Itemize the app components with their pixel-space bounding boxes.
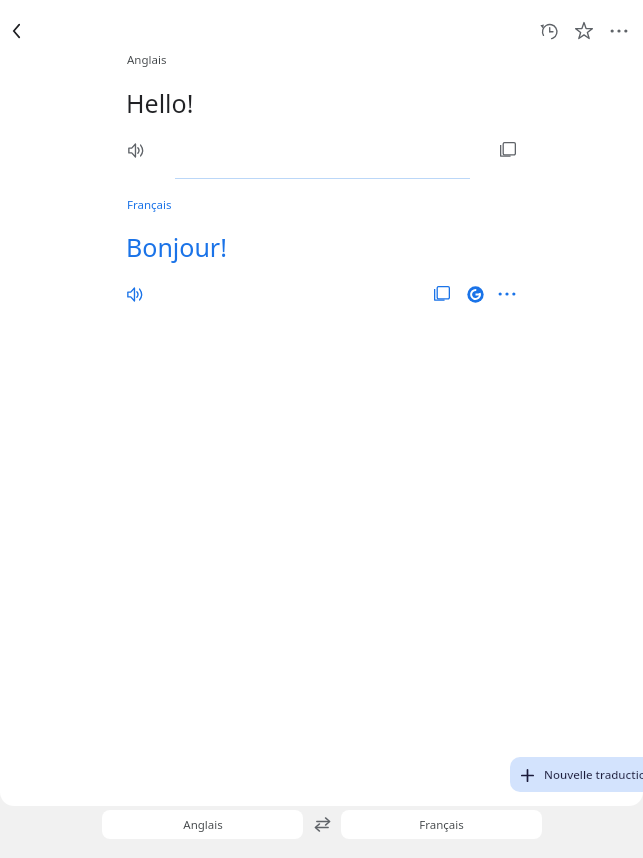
staticText: Anglais [127,52,167,68]
staticText: Français [127,197,172,213]
staticText: Français [419,817,464,833]
button[interactable]: Anglais [102,810,303,839]
button[interactable]: More options [602,14,636,48]
staticText: Nouvelle traduction [544,767,643,783]
button[interactable]: Copy translation [426,278,458,310]
staticText: Bonjour! [126,230,227,264]
button[interactable]: Listen translation [119,278,151,310]
staticText: Anglais [183,817,223,833]
button[interactable]: Nouvelle traduction [510,757,643,792]
staticText: Hello! [126,86,194,120]
button[interactable]: More translation options [491,278,523,310]
button[interactable]: Copy [492,134,524,166]
button[interactable]: Français [341,810,542,839]
button[interactable]: Save [567,14,601,48]
button[interactable]: Listen [120,134,152,166]
button[interactable]: Search with Google [459,278,491,310]
button[interactable]: Back [0,14,34,48]
button[interactable]: Swap languages [303,806,341,842]
button[interactable]: History [532,14,566,48]
